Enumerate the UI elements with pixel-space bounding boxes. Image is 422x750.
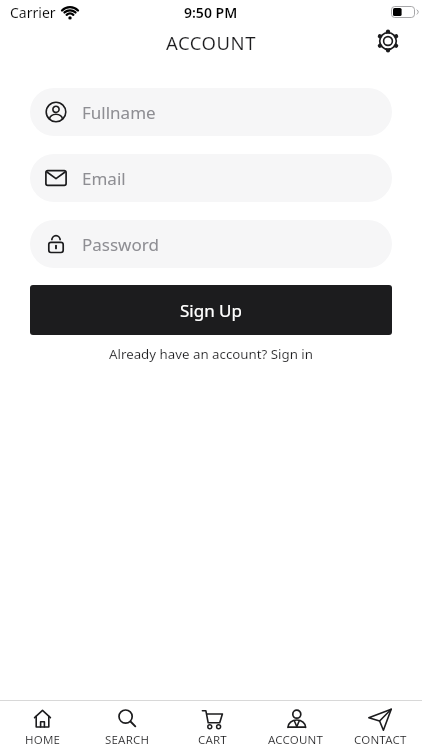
button[interactable]: ACCOUNT xyxy=(254,701,338,750)
staticText: Carrier xyxy=(10,3,56,22)
staticText: Email xyxy=(82,167,126,190)
staticText: Sign Up xyxy=(180,299,242,322)
staticText: CONTACT xyxy=(354,732,407,748)
button[interactable]: CART xyxy=(170,701,254,750)
staticText: ACCOUNT xyxy=(166,30,256,55)
button[interactable]: Fullname xyxy=(30,88,392,136)
staticText: CART xyxy=(198,732,227,748)
staticText: Password xyxy=(82,233,159,256)
staticText: SEARCH xyxy=(105,732,150,748)
button[interactable]: SEARCH xyxy=(85,701,170,750)
button[interactable]: Password xyxy=(30,220,392,268)
button[interactable]: Email xyxy=(30,154,392,202)
staticText: HOME xyxy=(25,732,61,748)
staticText: Fullname xyxy=(82,101,156,124)
button[interactable]: CONTACT xyxy=(338,701,422,750)
button[interactable]: Already have an account? Sign in xyxy=(0,345,422,363)
button[interactable]: HOME xyxy=(0,701,85,750)
staticText: ACCOUNT xyxy=(268,732,324,748)
staticText: 9:50 PM xyxy=(184,3,238,22)
button[interactable]: Sign Up xyxy=(30,285,392,335)
staticText: Already have an account? Sign in xyxy=(109,345,314,363)
button[interactable] xyxy=(377,30,399,52)
